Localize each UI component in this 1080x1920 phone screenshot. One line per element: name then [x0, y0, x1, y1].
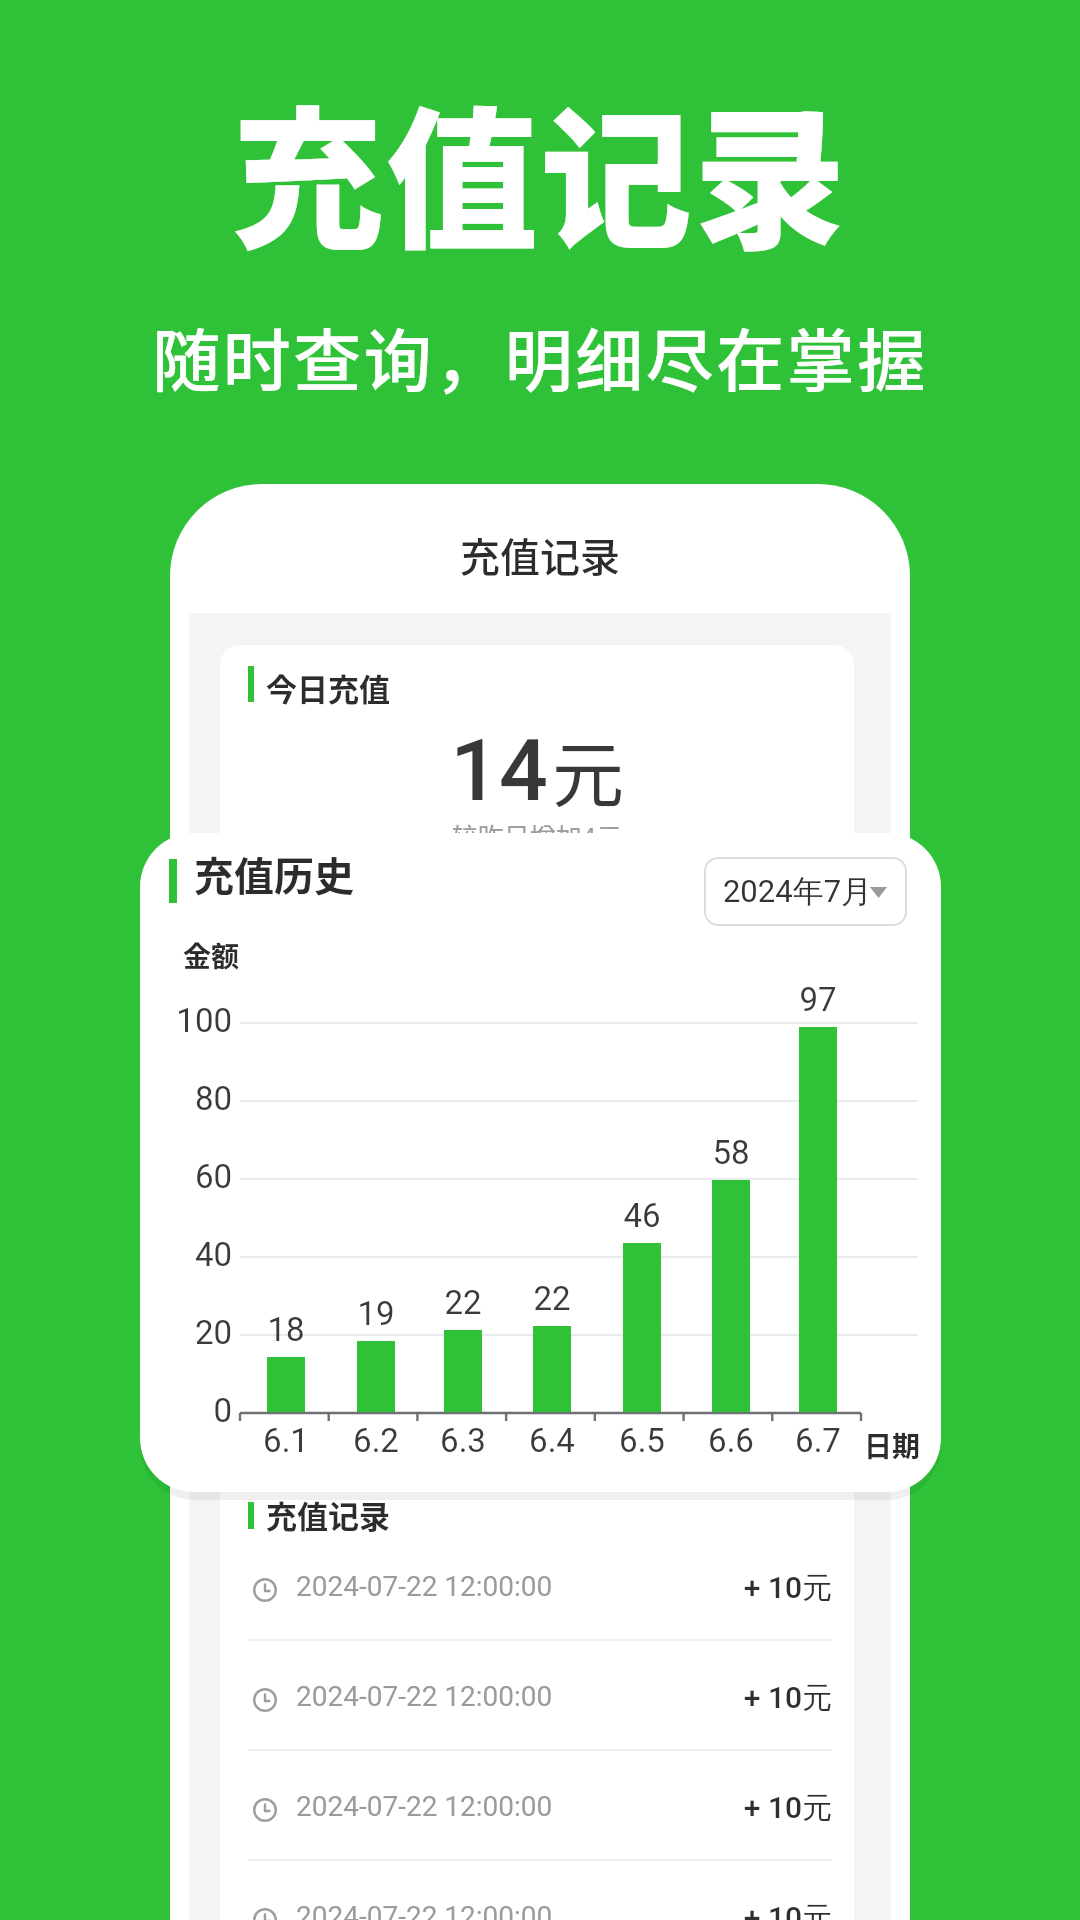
staticText: 充值记录 — [266, 1492, 390, 1537]
staticText: 18 — [246, 1310, 326, 1349]
staticText: 58 — [691, 1133, 771, 1172]
staticText: 2024-07-22 12:00:00 — [296, 1680, 553, 1713]
staticText: 6.3 — [423, 1421, 503, 1460]
staticText: 100 — [162, 1001, 232, 1040]
staticText: 较昨日增加4元 — [220, 817, 854, 855]
staticText: 22 — [512, 1279, 592, 1318]
staticText: + 10元 — [652, 1569, 832, 1607]
staticText: 80 — [162, 1079, 232, 1118]
staticText: + 10元 — [652, 1679, 832, 1717]
staticText: 日期 — [864, 1425, 921, 1466]
staticText: 充值记录 — [0, 60, 1080, 280]
staticText: 元 — [552, 717, 625, 821]
staticText: 40 — [162, 1235, 232, 1274]
staticText: 60 — [162, 1157, 232, 1196]
staticText: 6.1 — [246, 1421, 326, 1460]
staticText: 2024-07-22 12:00:00 — [296, 1570, 553, 1603]
staticText: 今日充值 — [266, 665, 390, 710]
staticText: 6.2 — [336, 1421, 416, 1460]
staticText: 22 — [423, 1283, 503, 1322]
staticText: + 10元 — [652, 1899, 832, 1920]
staticText: 2024-07-22 12:00:00 — [296, 1790, 553, 1823]
staticText: 随时查询，明细尽在掌握 — [0, 307, 1080, 405]
staticText: 6.5 — [602, 1421, 682, 1460]
staticText: 19 — [336, 1294, 416, 1333]
staticText: 6.4 — [512, 1421, 592, 1460]
staticText: 20 — [162, 1313, 232, 1352]
staticText: 46 — [602, 1196, 682, 1235]
staticText: 6.6 — [691, 1421, 771, 1460]
staticText: + 10元 — [652, 1789, 832, 1827]
staticText: 充值历史 — [194, 845, 354, 903]
staticText: 2024年7月 — [720, 872, 875, 911]
staticText: 充值记录 — [170, 526, 910, 584]
button[interactable]: 充值记录 — [220, 1470, 854, 1920]
staticText: 金额 — [183, 935, 240, 976]
staticText: 2024-07-22 12:00:00 — [296, 1900, 553, 1920]
staticText: 6.7 — [778, 1421, 858, 1460]
staticText: 14 — [446, 720, 548, 821]
button[interactable]: 2024年7月 — [704, 857, 907, 926]
staticText: 97 — [778, 980, 858, 1019]
staticText: 0 — [162, 1391, 232, 1430]
